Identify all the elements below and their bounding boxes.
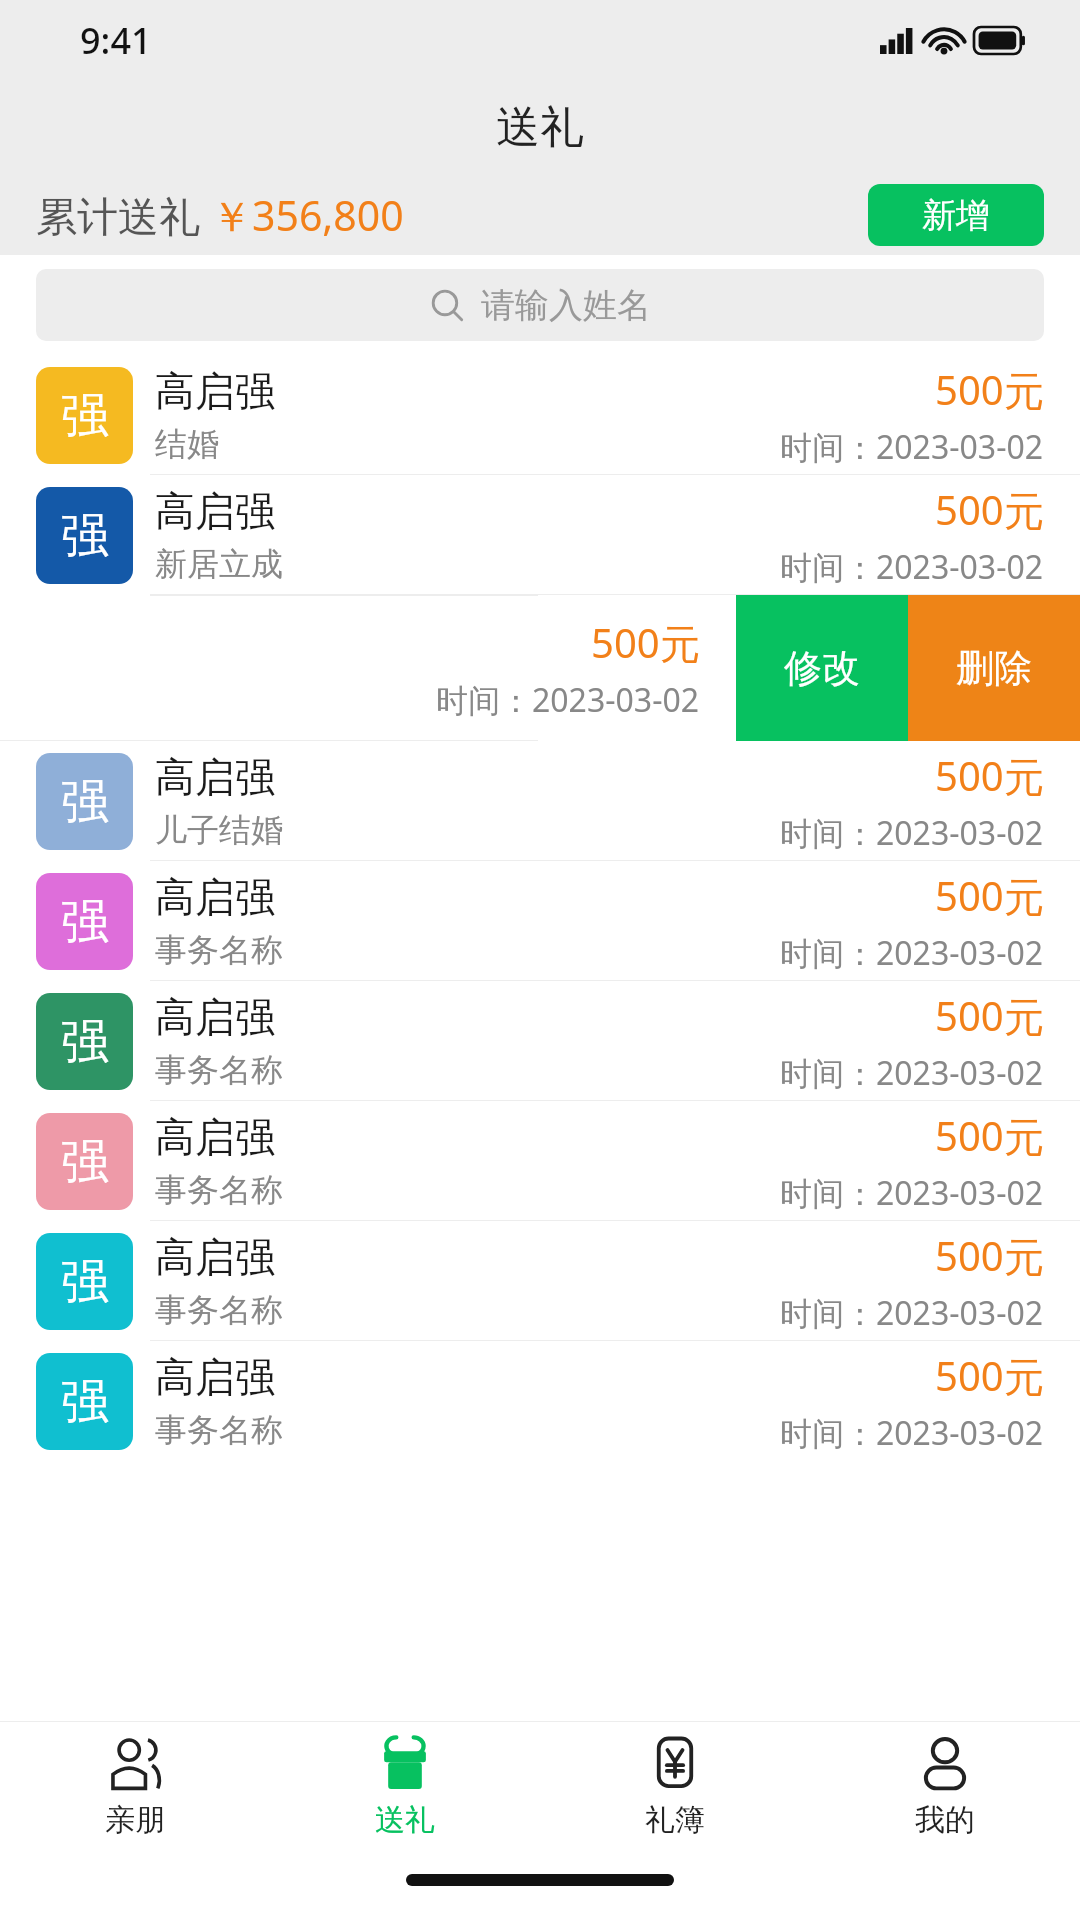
staticText: 9:41: [80, 16, 152, 65]
staticText: 亲朋: [105, 1801, 165, 1839]
staticText: 500元: [935, 1348, 1044, 1403]
staticText: 儿子结婚: [155, 810, 283, 850]
staticText: 送礼: [375, 1801, 435, 1839]
button[interactable]: 强: [0, 861, 1080, 981]
button[interactable]: 亲朋: [0, 1722, 270, 1852]
staticText: 新增: [922, 194, 990, 237]
staticText: 500元: [935, 1228, 1044, 1283]
staticText: 高启强: [155, 1232, 275, 1282]
staticText: 强: [61, 892, 109, 952]
button[interactable]: 强: [0, 1341, 1080, 1461]
staticText: 时间：2023-03-02: [780, 1051, 1044, 1095]
button[interactable]: 修改: [736, 595, 908, 741]
button[interactable]: 删除: [908, 595, 1080, 741]
button[interactable]: 礼簿: [540, 1722, 810, 1852]
button[interactable]: 强: [0, 741, 1080, 861]
button[interactable]: 强: [0, 475, 1080, 595]
staticText: 500元: [935, 1108, 1044, 1163]
staticText: ￥356,800: [211, 187, 404, 243]
staticText: 事务名称: [155, 1170, 283, 1210]
staticText: 删除: [956, 644, 1032, 692]
staticText: 强: [61, 772, 109, 832]
staticText: 时间：2023-03-02: [780, 425, 1044, 469]
staticText: 高启强: [155, 992, 275, 1042]
staticText: 高启强: [155, 366, 275, 416]
staticText: 礼簿: [645, 1801, 705, 1839]
staticText: 请输入姓名: [481, 284, 651, 327]
staticText: 修改: [784, 644, 860, 692]
staticText: 时间：2023-03-02: [780, 1291, 1044, 1335]
staticText: 时间：2023-03-02: [780, 545, 1044, 589]
button[interactable]: 新增: [868, 184, 1044, 246]
button[interactable]: 强: [0, 1101, 1080, 1221]
staticText: 我的: [915, 1801, 975, 1839]
staticText: 强: [61, 386, 109, 446]
button[interactable]: 请输入姓名: [36, 269, 1044, 341]
staticText: 事务名称: [155, 1290, 283, 1330]
staticText: 强: [61, 1372, 109, 1432]
button[interactable]: 送礼: [270, 1722, 540, 1852]
staticText: 强: [61, 1132, 109, 1192]
staticText: 500元: [935, 748, 1044, 803]
staticText: 500元: [935, 482, 1044, 537]
staticText: 强: [61, 1012, 109, 1072]
staticText: 500元: [935, 868, 1044, 923]
staticText: 500元: [591, 615, 700, 670]
staticText: 高启强: [155, 486, 275, 536]
staticText: 时间：2023-03-02: [780, 931, 1044, 975]
staticText: 时间：2023-03-02: [780, 1411, 1044, 1455]
staticText: 事务名称: [155, 930, 283, 970]
staticText: 高启强: [155, 872, 275, 922]
staticText: 新居立成: [155, 544, 283, 584]
staticText: 强: [61, 1252, 109, 1312]
button[interactable]: 我的: [810, 1722, 1080, 1852]
staticText: 结婚: [155, 424, 219, 464]
staticText: 时间：2023-03-02: [780, 1171, 1044, 1215]
staticText: 高启强: [155, 1352, 275, 1402]
button[interactable]: 强: [0, 355, 1080, 475]
staticText: 高启强: [155, 752, 275, 802]
staticText: 500元: [935, 988, 1044, 1043]
staticText: 高启强: [155, 1112, 275, 1162]
staticText: 事务名称: [155, 1050, 283, 1090]
staticText: 时间：2023-03-02: [780, 811, 1044, 855]
staticText: 累计送礼: [36, 187, 211, 243]
staticText: 送礼: [496, 100, 584, 155]
staticText: 时间：2023-03-02: [436, 678, 700, 722]
button[interactable]: 强: [0, 981, 1080, 1101]
staticText: 500元: [935, 362, 1044, 417]
staticText: 强: [61, 506, 109, 566]
staticText: 事务名称: [155, 1410, 283, 1450]
button[interactable]: 强: [0, 1221, 1080, 1341]
